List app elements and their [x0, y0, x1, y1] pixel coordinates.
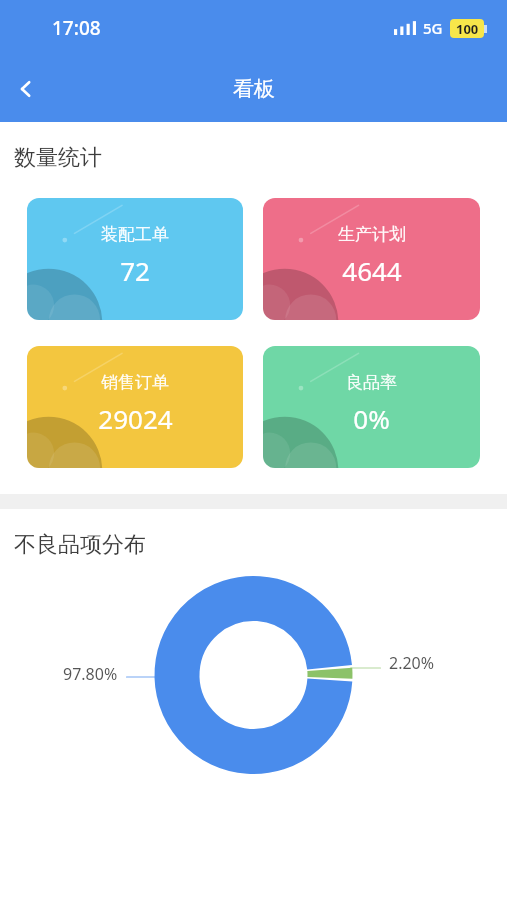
staticText: 72 — [120, 253, 150, 288]
staticText: 看板 — [233, 76, 275, 102]
button[interactable]: 生产计划 — [263, 198, 480, 320]
button[interactable]: Back — [0, 63, 52, 115]
staticText: 100 — [456, 20, 479, 38]
button[interactable]: 装配工单 — [27, 198, 243, 320]
staticText: 装配工单 — [101, 224, 169, 245]
staticText: 0% — [353, 401, 390, 436]
staticText: 数量统计 — [14, 144, 102, 172]
staticText: 销售订单 — [101, 372, 169, 393]
staticText: 生产计划 — [338, 224, 406, 245]
staticText: 良品率 — [346, 372, 397, 393]
staticText: 97.80% — [63, 663, 118, 685]
staticText: 29024 — [98, 401, 173, 436]
staticText: 5G — [423, 18, 443, 38]
staticText: 2.20% — [389, 652, 435, 674]
staticText: 17:08 — [52, 15, 101, 41]
staticText: 4644 — [342, 253, 402, 288]
button[interactable]: 销售订单 — [27, 346, 243, 468]
staticText: 不良品项分布 — [14, 531, 146, 559]
button[interactable]: 良品率 — [263, 346, 480, 468]
